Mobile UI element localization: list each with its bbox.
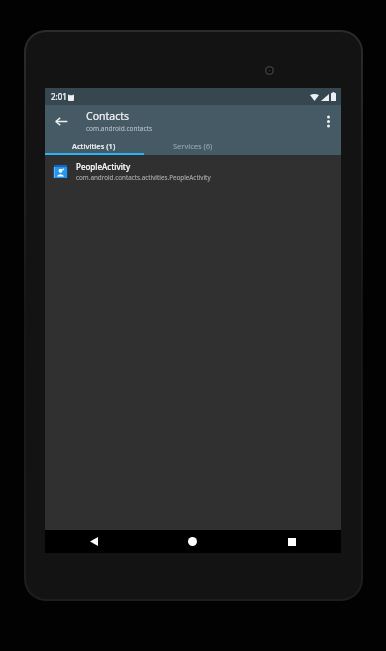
staticText: PeopleActivity [76,161,131,172]
staticText: 2:01 [51,91,67,102]
button[interactable]: Back [45,105,77,137]
button[interactable]: PeopleActivity [45,155,341,187]
staticText: com.android.contacts [86,124,153,133]
button[interactable]: Services (6) [143,137,242,155]
staticText: Contacts [86,109,130,123]
staticText: com.android.contacts.activities.PeopleAc… [76,173,211,182]
staticText: Services (6) [173,141,213,151]
button[interactable]: Back [45,530,143,553]
button[interactable]: More options [315,105,341,137]
button[interactable]: Activities (1) [45,137,143,155]
button[interactable]: Recents [242,530,341,553]
staticText: Activities (1) [72,141,116,151]
button[interactable]: Home [143,530,242,553]
